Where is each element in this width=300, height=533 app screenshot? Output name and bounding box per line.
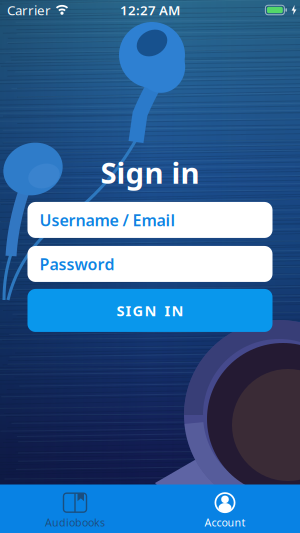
staticText: 12:27 AM <box>120 1 180 19</box>
staticText: Carrier <box>7 1 51 19</box>
staticText: Username / Email <box>39 209 175 230</box>
staticText: Password <box>39 253 114 274</box>
staticText: Account <box>204 515 245 529</box>
staticText: Audiobooks <box>45 515 105 529</box>
button[interactable]: Account <box>150 485 300 532</box>
button[interactable]: Password <box>27 246 272 282</box>
staticText: S I G N I N <box>116 301 183 320</box>
staticText: Sign in <box>100 153 199 192</box>
button[interactable]: S I G N I N <box>27 289 272 332</box>
button[interactable]: Audiobooks <box>0 485 150 532</box>
button[interactable]: Username / Email <box>27 202 272 238</box>
